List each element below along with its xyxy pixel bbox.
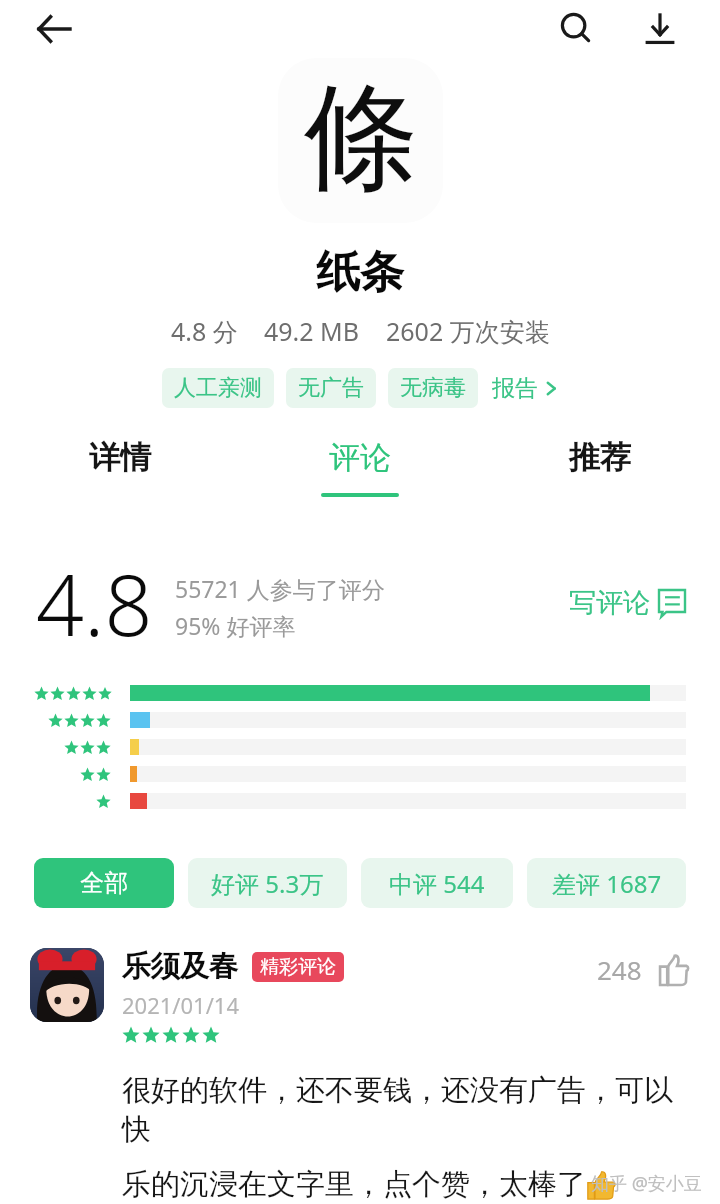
staticText: 乐的沉浸在文字里，点个赞，太棒了 (122, 1166, 586, 1203)
staticText: 中评 544 (389, 867, 485, 900)
staticText: 精彩评论 (260, 955, 336, 979)
staticText: 好评 5.3万 (211, 867, 324, 900)
staticText: 條 (303, 66, 419, 212)
staticText: 2021/01/14 (122, 990, 240, 1020)
staticText: 详情 (89, 438, 151, 477)
staticText: 报告 (492, 374, 538, 403)
button[interactable]: 人工亲测 (162, 368, 274, 408)
staticText: 知乎 @安小豆 (591, 1171, 702, 1196)
staticText: 很好的软件，还不要钱，还没有广告，可以快 (122, 1072, 696, 1148)
button[interactable]: Download (634, 3, 686, 55)
staticText: 248 (597, 952, 642, 987)
button[interactable]: 條 (278, 58, 443, 223)
staticText: 2602 万次安装 (386, 314, 550, 348)
button[interactable]: Back (30, 5, 78, 53)
staticText: 人工亲测 (174, 374, 262, 402)
button[interactable]: 无病毒 (388, 368, 478, 408)
button[interactable]: 好评 5.3万 (188, 858, 347, 908)
staticText: 纸条 (316, 245, 404, 300)
button[interactable]: 报告 (492, 374, 559, 403)
button[interactable]: 评论 (240, 420, 480, 512)
button[interactable]: Search (550, 3, 602, 55)
staticText: 55721 人参与了评分 (175, 573, 385, 604)
staticText: 95% 好评率 (175, 610, 296, 641)
staticText: 差评 1687 (552, 867, 662, 900)
button[interactable]: 中评 544 (361, 858, 513, 908)
staticText: 全部 (80, 868, 128, 898)
button[interactable]: 248 (597, 952, 690, 987)
staticText: 评论 (329, 438, 391, 477)
button[interactable]: 全部 (34, 858, 174, 908)
staticText: 无病毒 (400, 374, 466, 402)
button[interactable]: 详情 (0, 420, 240, 512)
staticText: 49.2 MB (264, 314, 360, 348)
button[interactable]: 写评论 (569, 586, 686, 620)
staticText: 乐须及春 (122, 948, 238, 985)
staticText: 推荐 (569, 438, 631, 477)
other: Like (656, 953, 690, 987)
button[interactable]: 推荐 (480, 420, 720, 512)
staticText: 无广告 (298, 374, 364, 402)
staticText: 4.8 分 (171, 314, 238, 348)
button[interactable]: 乐须及春 (30, 948, 690, 1044)
staticText: 写评论 (569, 586, 650, 620)
staticText: 4.8 (36, 546, 153, 660)
button[interactable]: 差评 1687 (527, 858, 686, 908)
button[interactable]: 无广告 (286, 368, 376, 408)
